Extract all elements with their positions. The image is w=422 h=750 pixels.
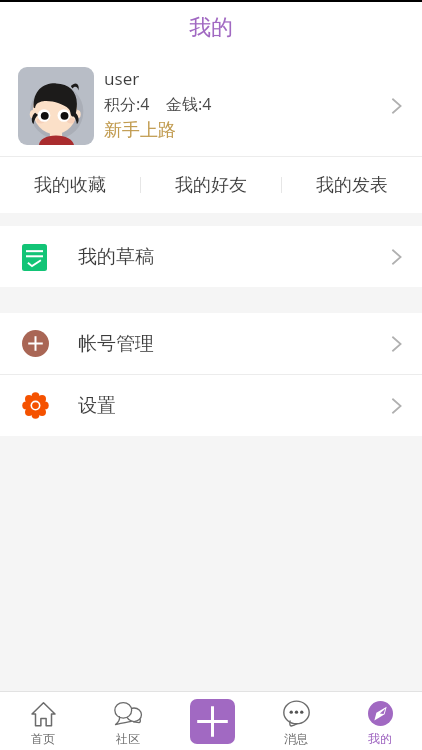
staticText: user bbox=[104, 67, 140, 90]
staticText: 积分:4 金钱:4 bbox=[104, 93, 212, 115]
button[interactable]: 我的收藏 bbox=[0, 157, 140, 213]
button[interactable]: 社区 bbox=[85, 692, 170, 750]
button[interactable]: 设置 bbox=[0, 375, 422, 436]
button[interactable]: 我的发表 bbox=[282, 157, 422, 213]
button[interactable]: 首页 bbox=[0, 692, 85, 750]
staticText: 消息 bbox=[284, 731, 308, 746]
staticText: 我的 bbox=[189, 14, 233, 42]
staticText: 设置 bbox=[78, 394, 391, 418]
button[interactable]: 帐号管理 bbox=[0, 313, 422, 374]
button[interactable]: user bbox=[0, 56, 422, 156]
staticText: 新手上路 bbox=[104, 119, 176, 142]
button[interactable]: 我的好友 bbox=[141, 157, 281, 213]
staticText: 我的收藏 bbox=[34, 174, 106, 197]
staticText: 帐号管理 bbox=[78, 332, 391, 356]
button[interactable]: 我的草稿 bbox=[0, 226, 422, 287]
staticText: 社区 bbox=[116, 731, 140, 746]
staticText: 我的好友 bbox=[175, 174, 247, 197]
staticText: 我的草稿 bbox=[78, 245, 391, 269]
staticText: 首页 bbox=[31, 731, 55, 746]
button[interactable]: 我的 bbox=[338, 692, 422, 750]
staticText: 我的 bbox=[368, 731, 392, 746]
button[interactable]: Add new post bbox=[190, 699, 235, 744]
button[interactable]: 消息 bbox=[254, 692, 338, 750]
staticText: 我的发表 bbox=[316, 174, 388, 197]
